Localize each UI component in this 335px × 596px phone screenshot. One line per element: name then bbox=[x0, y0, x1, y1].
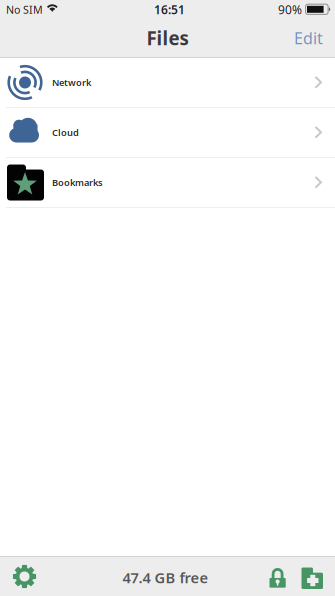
staticText: Edit bbox=[294, 27, 323, 49]
button[interactable]: Settings bbox=[1, 557, 48, 596]
staticText: Network bbox=[52, 76, 91, 89]
staticText: 90% bbox=[278, 1, 302, 17]
staticText: Files bbox=[146, 26, 188, 50]
button[interactable]: Network bbox=[0, 58, 335, 108]
button[interactable]: Edit bbox=[284, 19, 333, 57]
staticText: 47.4 GB free bbox=[122, 568, 208, 587]
button[interactable]: New folder bbox=[296, 557, 333, 596]
staticText: No SIM bbox=[6, 2, 43, 17]
staticText: 16:51 bbox=[154, 1, 185, 17]
staticText: Cloud bbox=[52, 126, 79, 139]
button[interactable]: Cloud bbox=[0, 108, 335, 158]
button[interactable]: Bookmarks bbox=[0, 158, 335, 208]
button[interactable]: Lock bbox=[260, 557, 296, 596]
staticText: Bookmarks bbox=[52, 176, 103, 189]
